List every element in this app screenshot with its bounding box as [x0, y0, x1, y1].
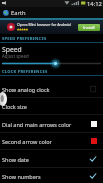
button[interactable]: Speed	[0, 43, 103, 59]
button[interactable]: Second arrow color	[0, 132, 103, 150]
staticText: Dial and main arrows color	[2, 121, 72, 128]
staticText: Second arrow color	[2, 138, 52, 145]
staticText: Opera Mini browser for Android	[17, 22, 71, 27]
staticText: Earth	[11, 9, 26, 17]
button[interactable]: Opera Mini browser for Android	[0, 20, 103, 34]
other: Unchecked	[89, 85, 97, 93]
staticText: Show analog clock	[2, 86, 50, 93]
staticText: Show numbers	[2, 173, 41, 180]
staticText: Show date	[2, 156, 29, 163]
button[interactable]: Install	[78, 24, 100, 31]
staticText: Install	[83, 25, 95, 30]
staticText: Adjust speed	[2, 53, 29, 59]
button[interactable]: Show date	[0, 150, 103, 168]
other: Checked	[89, 155, 97, 163]
button[interactable]: Show analog clock	[0, 80, 103, 98]
button[interactable]: Clock size	[0, 97, 103, 115]
staticText: CLOCK PREFERENCES	[2, 69, 48, 75]
staticText: SPEED PREFERENCES	[2, 36, 47, 42]
staticText: 14:12	[87, 0, 102, 6]
button[interactable]: Show numbers	[0, 167, 103, 183]
button[interactable]: Dial and main arrows color	[0, 115, 103, 133]
staticText: Clock size	[2, 103, 27, 110]
staticText: Speed	[2, 45, 22, 54]
other: Checked	[89, 172, 97, 180]
